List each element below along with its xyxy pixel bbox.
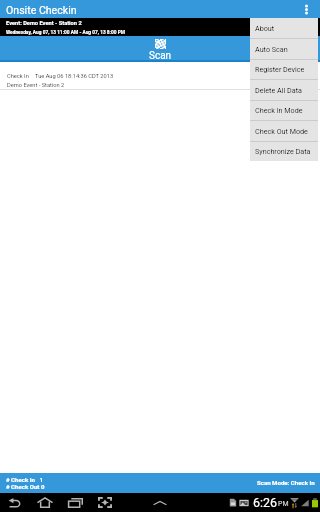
staticText: # Check In 1	[6, 476, 43, 483]
button[interactable]: Check In	[0, 62, 320, 89]
button[interactable]: Register Device	[250, 59, 318, 79]
button[interactable]: Recent apps	[64, 493, 86, 512]
staticText: 6:26	[253, 495, 278, 510]
staticText: Synchronize Data	[255, 147, 311, 155]
button[interactable]: About	[250, 18, 318, 38]
staticText: Scan Mode: Check In	[257, 479, 315, 486]
staticText: Check Out Mode	[255, 127, 308, 135]
button[interactable]: Auto Scan	[250, 38, 318, 59]
staticText: Delete All Data	[255, 86, 302, 94]
button[interactable]: Check In Mode	[250, 100, 318, 120]
button[interactable]: Scan	[0, 36, 320, 60]
button[interactable]: Screenshot	[94, 493, 116, 512]
staticText: Auto Scan	[255, 45, 288, 53]
staticText: Wednesday, Aug 07, 13 11:00 AM - Aug 07,…	[6, 30, 125, 36]
button[interactable]: More options	[298, 0, 314, 18]
staticText: Onsite Checkin	[6, 4, 77, 16]
staticText: About	[255, 24, 275, 32]
staticText: Register Device	[255, 65, 305, 73]
staticText: Tue Aug 06 18:14:36 CDT 2013	[35, 73, 114, 80]
button[interactable]: Back	[3, 493, 25, 512]
staticText: # Check Out 0	[6, 483, 45, 490]
staticText: Demo Event - Station 2	[7, 82, 65, 89]
button[interactable]: Synchronize Data	[250, 141, 318, 161]
staticText: Check In Mode	[255, 106, 303, 114]
staticText: Scan	[149, 50, 172, 60]
button[interactable]: Home	[34, 493, 56, 512]
staticText: PM	[278, 500, 289, 508]
staticText: Check In	[7, 73, 29, 80]
button[interactable]: Delete All Data	[250, 79, 318, 100]
button[interactable]: Check Out Mode	[250, 120, 318, 141]
staticText: Event: Demo Event - Station 2	[6, 20, 82, 27]
button[interactable]: Expand status bar	[149, 493, 171, 512]
